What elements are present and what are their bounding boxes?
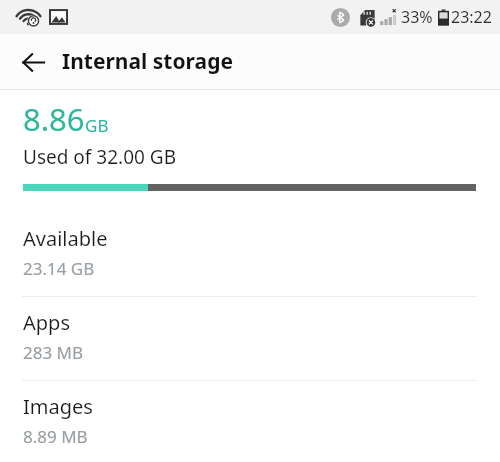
staticText: 8.89 MB — [23, 425, 88, 446]
button[interactable]: Images — [0, 381, 500, 462]
staticText: Images — [23, 393, 93, 420]
staticText: Available — [23, 225, 108, 252]
staticText: 23:22 — [451, 6, 492, 28]
staticText: 33% — [401, 6, 433, 28]
button[interactable]: Apps — [0, 297, 500, 380]
staticText: Apps — [23, 309, 70, 336]
staticText: 283 MB — [23, 341, 84, 364]
button[interactable]: Back — [13, 42, 53, 82]
button[interactable]: Available — [0, 213, 500, 296]
staticText: 8.86 — [23, 98, 85, 140]
staticText: Used of 32.00 GB — [23, 144, 176, 170]
staticText: Internal storage — [62, 47, 233, 76]
staticText: GB — [85, 114, 109, 137]
staticText: 23.14 GB — [23, 257, 95, 280]
